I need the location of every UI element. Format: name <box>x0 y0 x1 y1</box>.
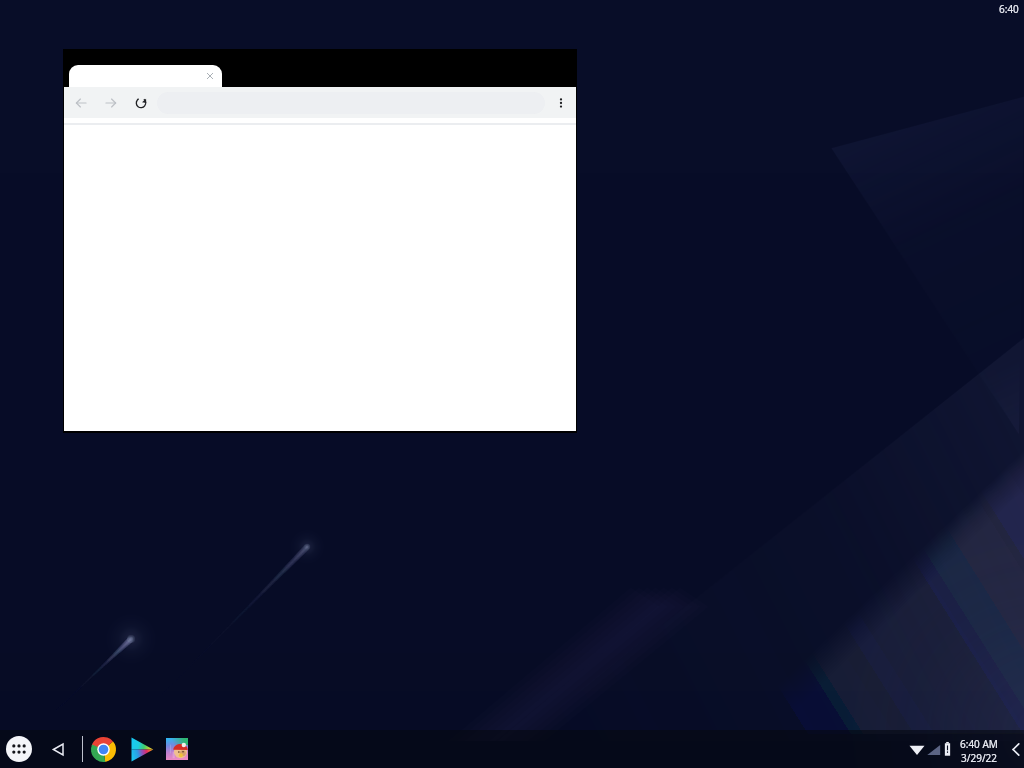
button[interactable]: Status tray <box>0 730 1024 768</box>
staticText: 6:40 <box>999 2 1019 16</box>
button[interactable]: More options <box>552 94 570 112</box>
button[interactable]: Play Store <box>126 734 156 764</box>
button[interactable]: Launcher <box>5 735 33 763</box>
button[interactable]: Reload <box>131 93 151 113</box>
button[interactable]: Back <box>45 736 71 762</box>
button[interactable]: Back <box>71 93 91 113</box>
button[interactable]: Close tab <box>69 65 222 87</box>
button[interactable]: Forward <box>101 93 121 113</box>
staticText: 6:40 AM <box>960 737 998 751</box>
other: Close tab <box>207 73 213 79</box>
button[interactable]: Chrome <box>88 734 118 764</box>
button[interactable]: Game app <box>162 734 192 764</box>
staticText: 3/29/22 <box>961 751 998 765</box>
